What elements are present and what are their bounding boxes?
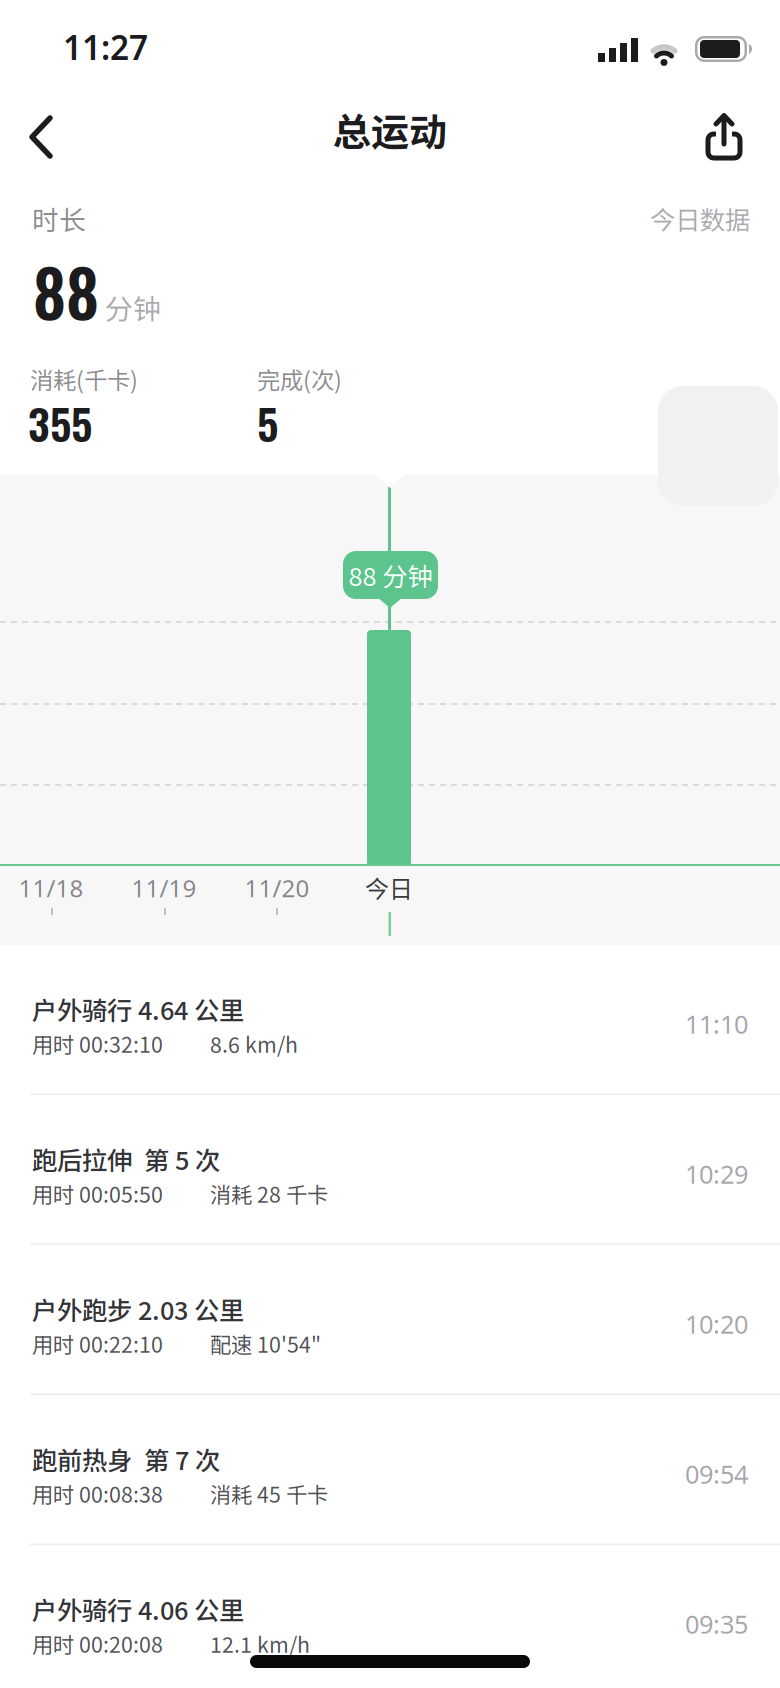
staticText: 11:27	[63, 25, 148, 69]
staticText: 11/19	[131, 872, 196, 904]
staticText: 355	[28, 391, 92, 454]
button[interactable]: 户外跑步 2.03 公里	[0, 1245, 780, 1395]
staticText: 配速 10'54"	[210, 1328, 321, 1359]
staticText: 11/18	[18, 872, 83, 904]
staticText: 户外骑行 4.06 公里	[32, 1590, 244, 1627]
staticText: 10:20	[685, 1307, 748, 1341]
staticText: 消耗 45 千卡	[210, 1478, 328, 1509]
staticText: 88	[33, 244, 99, 339]
staticText: 09:35	[685, 1607, 748, 1641]
staticText: 12.1 km/h	[210, 1628, 310, 1659]
staticText: 户外跑步 2.03 公里	[32, 1290, 244, 1327]
staticText: 分钟	[105, 287, 161, 327]
staticText: 09:54	[685, 1457, 748, 1491]
button[interactable]: 跑后拉伸 第 5 次	[0, 1095, 780, 1245]
staticText: 11/20	[244, 872, 309, 904]
button[interactable]: 跑前热身 第 7 次	[0, 1395, 780, 1545]
staticText: 用时 00:08:38	[32, 1478, 163, 1509]
staticText: 消耗(千卡)	[30, 362, 138, 396]
button[interactable]: Share	[696, 110, 752, 166]
staticText: 时长	[32, 199, 86, 238]
button[interactable]: 户外骑行 4.06 公里	[0, 1545, 780, 1688]
staticText: 10:29	[685, 1157, 748, 1191]
staticText: 总运动	[333, 102, 447, 157]
staticText: 用时 00:32:10	[32, 1028, 163, 1059]
staticText: 11:10	[685, 1007, 748, 1041]
staticText: 跑前热身 第 7 次	[32, 1440, 220, 1477]
staticText: 5	[257, 391, 278, 454]
staticText: 户外骑行 4.64 公里	[32, 990, 244, 1027]
staticText: 今日	[365, 870, 413, 905]
staticText: 今日数据	[650, 200, 750, 237]
button[interactable]: Back	[26, 114, 82, 160]
staticText: 8.6 km/h	[210, 1028, 298, 1059]
staticText: 消耗 28 千卡	[210, 1178, 328, 1209]
staticText: 完成(次)	[257, 362, 342, 396]
staticText: 用时 00:20:08	[32, 1628, 163, 1659]
button[interactable]: 户外骑行 4.64 公里	[0, 945, 780, 1095]
staticText: 跑后拉伸 第 5 次	[32, 1140, 220, 1177]
staticText: 88 分钟	[348, 557, 432, 593]
staticText: 用时 00:05:50	[32, 1178, 163, 1209]
staticText: 用时 00:22:10	[32, 1328, 163, 1359]
